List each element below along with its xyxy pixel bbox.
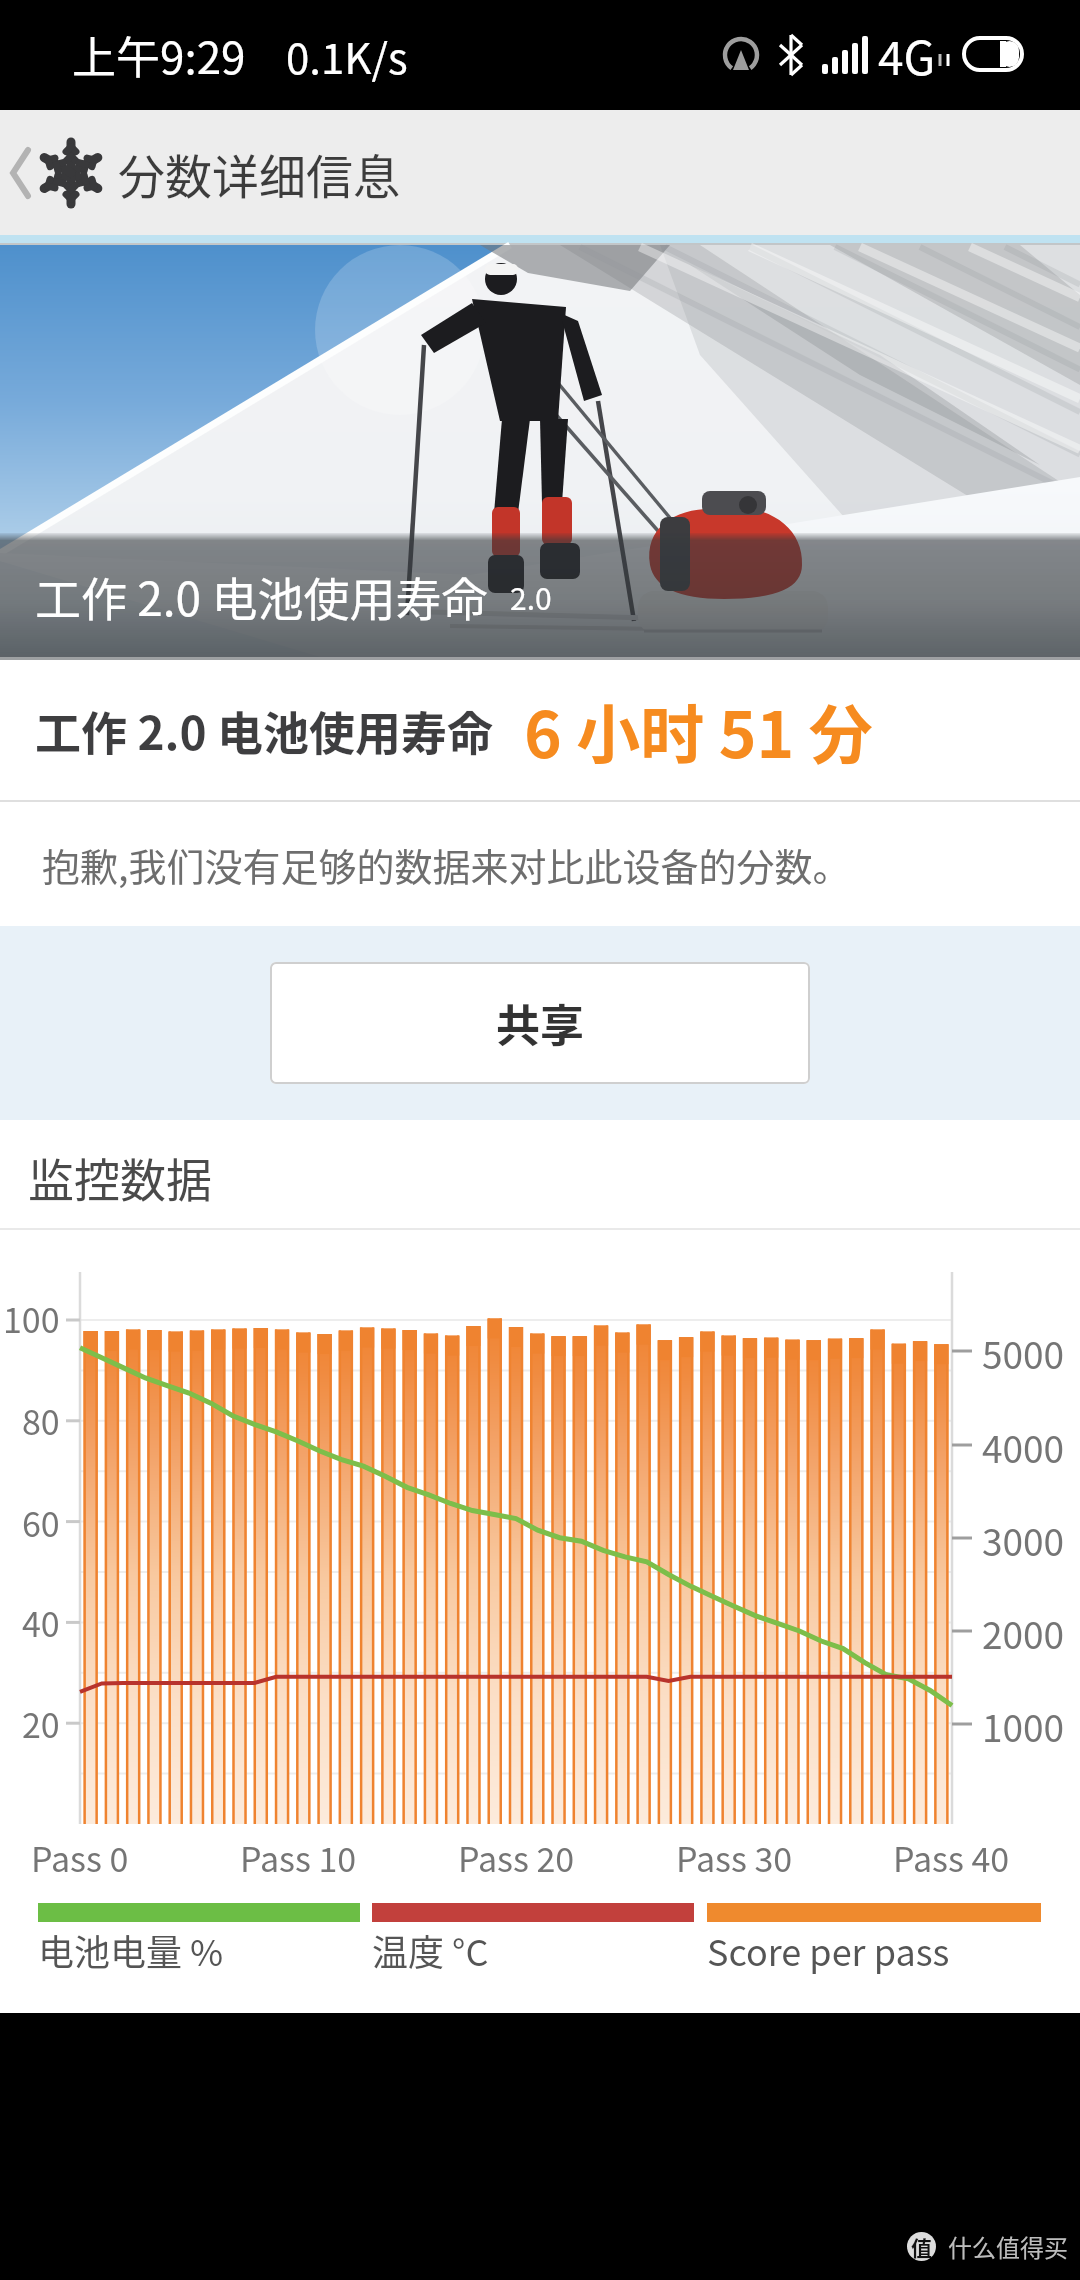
- staticText: 40: [22, 1598, 60, 1647]
- staticText: 电池电量 %: [38, 1924, 224, 1976]
- button[interactable]: 分数详细信息: [0, 110, 1080, 235]
- staticText: 分数详细信息: [118, 139, 400, 207]
- staticText: 6 小时 51 分: [524, 684, 873, 777]
- staticText: 什么值得买: [948, 2229, 1068, 2264]
- staticText: 2000: [982, 1606, 1065, 1656]
- staticText: 温度 °C: [372, 1924, 489, 1976]
- staticText: 共享: [496, 991, 584, 1055]
- staticText: 80: [22, 1396, 60, 1445]
- staticText: Pass 30: [676, 1833, 793, 1882]
- staticText: Score per pass: [707, 1924, 950, 1976]
- staticText: 4G: [878, 22, 936, 89]
- staticText: 5000: [982, 1326, 1065, 1376]
- staticText: 60: [22, 1498, 60, 1547]
- staticText: Pass 40: [893, 1833, 1010, 1882]
- button[interactable]: 共享: [270, 962, 810, 1084]
- staticText: 20: [22, 1699, 60, 1748]
- staticText: 0.1K/s: [286, 25, 408, 86]
- staticText: Pass 0: [31, 1833, 129, 1882]
- staticText: 监控数据: [28, 1144, 212, 1211]
- staticText: 工作 2.0 电池使用寿命: [35, 563, 488, 630]
- staticText: 2.0: [510, 575, 552, 618]
- staticText: 100: [3, 1294, 60, 1343]
- staticText: 抱歉,我们没有足够的数据来对比此设备的分数。: [42, 837, 851, 892]
- staticText: Pass 10: [240, 1833, 357, 1882]
- staticText: 值: [911, 2232, 932, 2261]
- staticText: 4000: [982, 1420, 1065, 1470]
- staticText: 上午9:29: [72, 23, 246, 87]
- staticText: 1000: [982, 1699, 1065, 1749]
- staticText: 工作 2.0 电池使用寿命: [35, 697, 494, 764]
- staticText: Pass 20: [458, 1833, 575, 1882]
- staticText: 3000: [982, 1513, 1065, 1563]
